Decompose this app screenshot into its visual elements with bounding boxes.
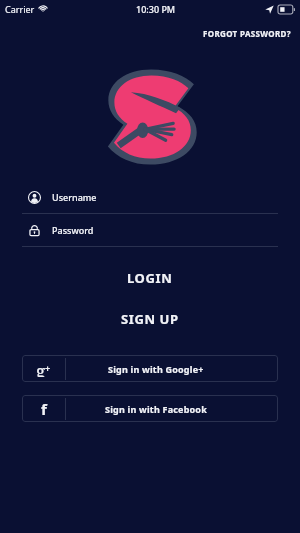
button[interactable]: Password — [22, 214, 278, 246]
button[interactable]: LOGIN — [0, 264, 300, 292]
button[interactable]: FORGOT PASSWORD? — [0, 24, 300, 42]
staticText: FORGOT PASSWORD? — [203, 28, 291, 39]
staticText: Sign in with Google+ — [108, 363, 204, 375]
staticText: SIGN UP — [121, 310, 179, 328]
staticText: 10:30 PM — [136, 3, 176, 15]
staticText: Password — [52, 224, 94, 236]
button[interactable]: f — [22, 395, 278, 422]
button[interactable]: Username — [22, 181, 278, 213]
other: Username — [28, 191, 41, 204]
staticText: LOGIN — [127, 269, 173, 287]
staticText: f — [41, 399, 47, 419]
staticText: g — [36, 359, 46, 377]
button[interactable]: g — [22, 355, 278, 382]
staticText: + — [45, 362, 51, 374]
other: App logo — [106, 68, 200, 166]
staticText: Sign in with Facebook — [105, 403, 207, 415]
other: Password — [28, 224, 41, 237]
staticText: Username — [52, 191, 97, 203]
button[interactable]: SIGN UP — [0, 305, 300, 333]
staticText: Carrier — [5, 3, 35, 15]
